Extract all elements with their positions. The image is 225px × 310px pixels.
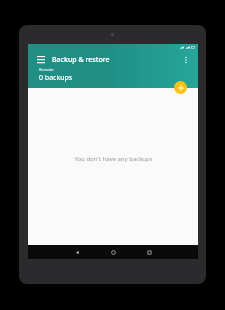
button[interactable]: Create backup [174,81,187,94]
button[interactable]: Home [106,246,120,258]
button[interactable]: Open navigation drawer [34,53,48,67]
staticText: Backup & restore [52,55,110,65]
staticText: Remote [39,67,54,72]
staticText: 0 backups [39,73,73,83]
button[interactable]: More options [179,53,193,67]
button[interactable]: Back [70,246,84,258]
staticText: You don't have any backups [74,155,153,163]
button[interactable]: Recent apps [142,246,156,258]
